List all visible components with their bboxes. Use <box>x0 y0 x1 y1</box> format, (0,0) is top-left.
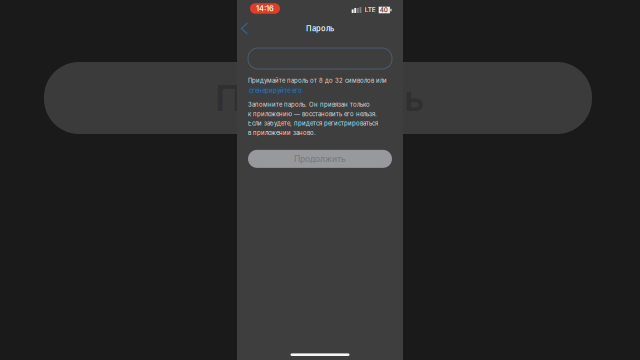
staticText: сгенерируйте его <box>249 87 302 94</box>
staticText: Продолжить <box>294 154 346 164</box>
staticText: Запомните пароль. Он привязан только <box>248 101 370 108</box>
staticText: 40 <box>380 6 388 14</box>
button[interactable]: сгенерируйте его <box>248 86 303 95</box>
staticText: Если забудете, придётся регистрироваться <box>248 120 378 127</box>
staticText: Придумайте пароль от 8 до 32 символов ил… <box>248 77 387 84</box>
button[interactable]: Поле пароля <box>248 48 392 69</box>
button[interactable]: Продолжить <box>248 150 392 168</box>
staticText: Пароль <box>306 24 334 33</box>
staticText: к приложению — восстановить его нельзя. <box>248 110 377 118</box>
button[interactable]: Назад <box>237 18 257 39</box>
staticText: в приложении заново. <box>248 129 316 136</box>
staticText: LTE <box>365 6 376 14</box>
staticText: 14:16 <box>256 4 274 13</box>
staticText: Пароль <box>215 76 424 120</box>
